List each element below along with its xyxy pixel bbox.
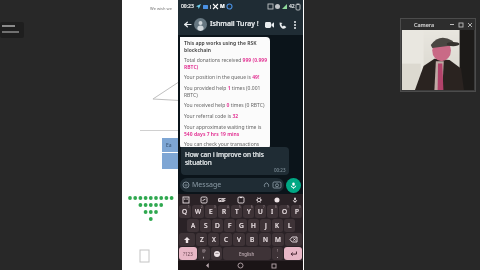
button[interactable]: Tooltip [0, 22, 24, 38]
button[interactable]: B [246, 233, 258, 246]
button[interactable]: Emoji [211, 247, 222, 260]
button[interactable]: S [200, 219, 211, 232]
button[interactable]: Message [180, 178, 284, 192]
button[interactable]: C [220, 233, 232, 246]
staticText: You received help 0 times (0 RBTC) [184, 102, 265, 109]
button[interactable]: 3 [205, 205, 217, 218]
button[interactable]: 7 [255, 205, 266, 218]
staticText: U [258, 207, 263, 216]
button[interactable]: Keyboard layout [182, 196, 190, 204]
button[interactable]: M [272, 233, 284, 246]
staticText: 7 [263, 205, 265, 209]
button[interactable]: H [248, 219, 259, 232]
button[interactable]: Voice input [291, 196, 299, 204]
staticText: @ [202, 248, 206, 253]
button[interactable]: 0 [291, 205, 302, 218]
button[interactable]: 9 [279, 205, 290, 218]
staticText: Ishmail Turay ! [210, 19, 259, 29]
button[interactable]: G [236, 219, 247, 232]
button[interactable]: Sticker [200, 196, 208, 204]
button[interactable]: Ishmail Turay ! [210, 19, 263, 29]
button[interactable]: Attach [263, 182, 270, 189]
button[interactable]: L [284, 219, 295, 232]
button[interactable]: Settings [255, 196, 263, 204]
staticText: You can check your transactions history [184, 141, 267, 147]
staticText: J [265, 221, 267, 230]
staticText: Y [247, 207, 251, 216]
button[interactable]: 6 [243, 205, 254, 218]
button[interactable]: Z [196, 233, 207, 246]
button[interactable]: Camera [273, 181, 281, 189]
button[interactable]: Record voice message [286, 178, 301, 193]
staticText: C [224, 235, 229, 244]
staticText: M [220, 3, 225, 10]
button[interactable]: Shift [179, 233, 195, 246]
button[interactable]: Theme [273, 196, 281, 204]
button[interactable]: 1 [179, 205, 191, 218]
staticText: E [209, 207, 213, 216]
button[interactable]: 4 [218, 205, 230, 218]
staticText: 3 [214, 205, 216, 209]
button[interactable]: F [224, 219, 235, 232]
staticText: We wish we [150, 6, 172, 11]
staticText: I [271, 207, 274, 216]
button[interactable]: More options [289, 19, 300, 30]
button[interactable]: Close [465, 20, 474, 29]
staticText: ! [277, 248, 279, 253]
staticText: M [275, 235, 281, 244]
staticText: 5 [239, 205, 241, 209]
staticText: 0 [299, 205, 301, 209]
button[interactable]: Recent apps [270, 262, 277, 269]
staticText: Your approximate waiting time is 540 day… [184, 124, 267, 137]
staticText: 00:23 [274, 167, 286, 173]
button[interactable]: Voice call [276, 18, 289, 31]
button[interactable]: Minimize [447, 20, 456, 29]
button[interactable]: A [187, 219, 199, 232]
button[interactable]: Period [272, 247, 283, 260]
button[interactable]: Back [204, 262, 211, 269]
staticText: Your position in the queue is 49! [184, 74, 260, 81]
staticText: Total donations received 999 (0.999 RBTC… [184, 57, 267, 70]
button[interactable]: X [208, 233, 219, 246]
staticText: , [203, 253, 205, 260]
button[interactable]: Clipboard [237, 196, 245, 204]
button[interactable]: Enter [284, 247, 302, 260]
button[interactable]: Back [181, 18, 193, 30]
button[interactable]: 5 [231, 205, 242, 218]
button[interactable]: 2 [192, 205, 204, 218]
button[interactable]: 8 [267, 205, 278, 218]
staticText: H [251, 221, 256, 230]
staticText: This app works using the RSK blockchain [184, 40, 267, 53]
button[interactable]: GIF [218, 197, 226, 203]
staticText: You provided help 1 times (0.001 RBTC) [184, 85, 267, 98]
staticText: T [235, 207, 239, 216]
button[interactable]: D [212, 219, 223, 232]
staticText: Q [182, 207, 188, 216]
staticText: 6 [251, 205, 253, 209]
button[interactable]: ?123 [179, 247, 197, 260]
button[interactable]: V [233, 233, 245, 246]
button[interactable]: Contact avatar [194, 18, 207, 31]
staticText: 8 [275, 205, 277, 209]
staticText: GIF [218, 197, 226, 203]
button[interactable]: Video call [263, 18, 276, 31]
button[interactable]: N [259, 233, 271, 246]
staticText: D [215, 221, 220, 230]
button[interactable]: Maximize [456, 20, 465, 29]
button[interactable]: J [260, 219, 271, 232]
button[interactable]: This app works using the RSK blockchain [180, 37, 270, 149]
button[interactable]: Comma [198, 247, 210, 260]
button[interactable]: Home [237, 262, 244, 269]
staticText: English [239, 251, 255, 257]
staticText: P [295, 207, 299, 216]
staticText: 42 [289, 3, 295, 10]
staticText: X [212, 235, 216, 244]
staticText: 1 [188, 205, 190, 209]
button[interactable]: How can i improve on this situation [181, 147, 289, 175]
staticText: V [237, 235, 241, 244]
button[interactable]: English [223, 247, 271, 260]
button[interactable]: K [272, 219, 283, 232]
staticText: . [277, 253, 279, 260]
button[interactable]: Backspace [285, 233, 302, 246]
staticText: 9 [287, 205, 289, 209]
